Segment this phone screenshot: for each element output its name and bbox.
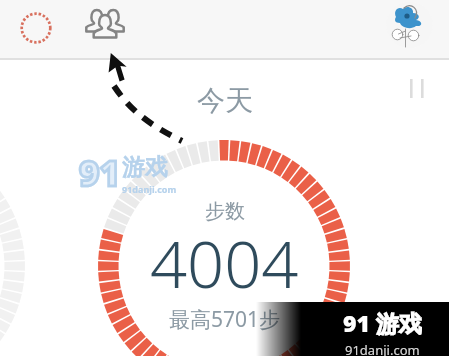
staticText: 4004 [150,219,299,308]
staticText: 游戏 [122,153,168,182]
button[interactable]: Profile [385,0,435,50]
staticText: 最高5701步 [169,305,281,334]
staticText: 今天 [197,83,253,118]
staticText: 91danji.com [345,341,420,356]
staticText: 91 [79,149,121,197]
staticText: 91 游戏 [343,307,422,338]
button[interactable]: Record activity [14,6,58,50]
staticText: 步数 [205,199,245,224]
button[interactable]: Pause [401,72,433,104]
staticText: 91danji.com [122,183,177,195]
staticText: 91 [79,149,121,197]
button[interactable]: Friends [82,5,128,51]
